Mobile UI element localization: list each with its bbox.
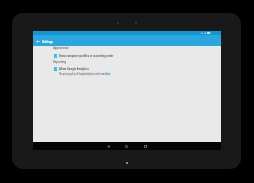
- button[interactable]: Allow Google Analytics: [53, 66, 111, 77]
- button[interactable]: Recent apps: [141, 142, 149, 150]
- staticText: Allow Google Analytics: [59, 67, 89, 71]
- button[interactable]: Back: [104, 142, 112, 150]
- button[interactable]: Show computer profiles in ascending orde…: [53, 53, 115, 59]
- staticText: Reporting: [53, 60, 66, 64]
- staticText: Settings: [42, 39, 53, 44]
- button[interactable]: Home: [122, 142, 130, 150]
- button[interactable]: Navigate up: [34, 36, 42, 46]
- staticText: here: [106, 72, 110, 76]
- staticText: Appearance: [53, 46, 69, 50]
- button[interactable]: here: [106, 72, 110, 76]
- staticText: Show computer profiles in ascending orde…: [59, 54, 114, 58]
- staticText: The privacy policy of Google Analytics c…: [59, 72, 106, 76]
